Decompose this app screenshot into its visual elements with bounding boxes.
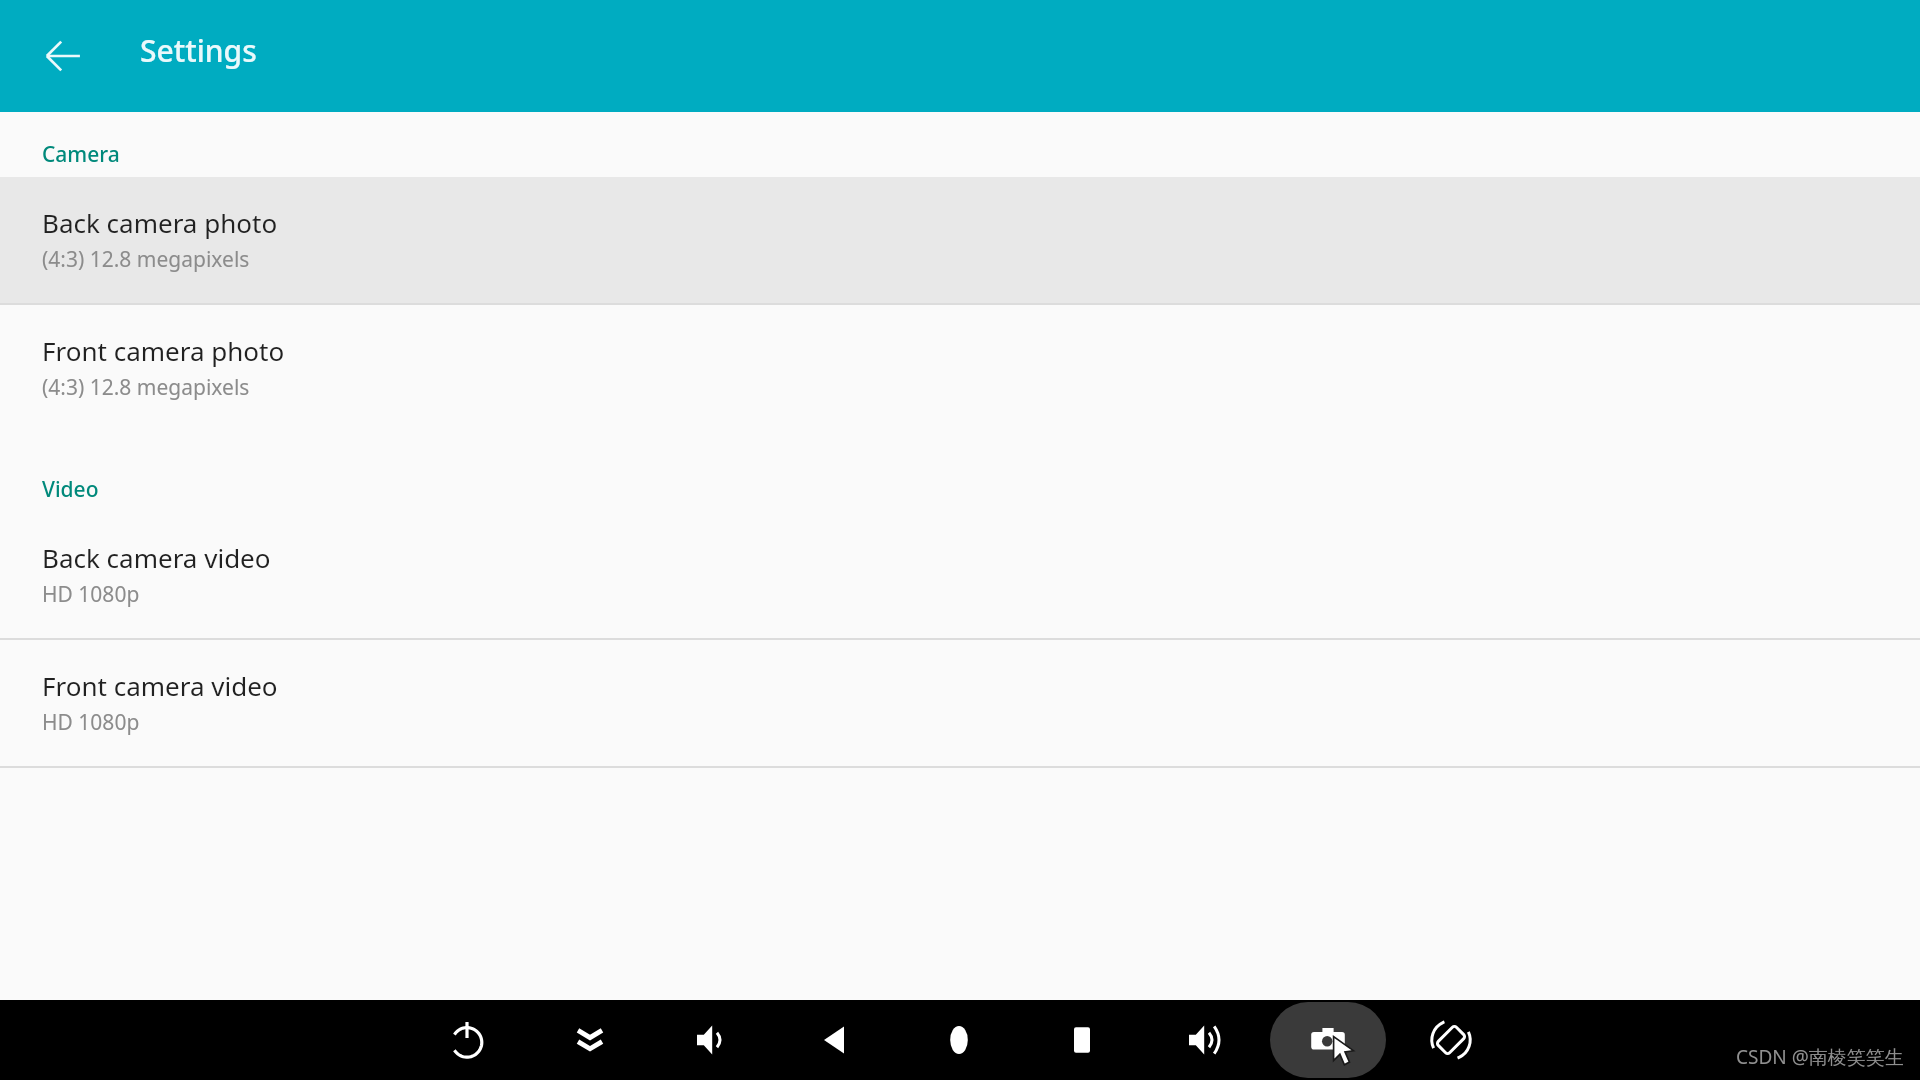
button[interactable]: Back camera photo (0, 177, 1920, 303)
button[interactable]: Screenshot (1270, 1002, 1386, 1078)
staticText: Front camera video (42, 668, 278, 703)
staticText: Settings (140, 30, 257, 71)
staticText: Video (42, 475, 99, 504)
button[interactable]: Rotate (1403, 1000, 1499, 1080)
button[interactable]: Volume up (1157, 1000, 1253, 1080)
button[interactable]: Recent apps (1034, 1000, 1130, 1080)
button[interactable]: Front camera photo (0, 305, 1920, 431)
button[interactable]: Collapse (542, 1000, 638, 1080)
staticText: Back camera video (42, 540, 271, 575)
button[interactable]: Home (911, 1000, 1007, 1080)
button[interactable]: Front camera video (0, 640, 1920, 766)
button[interactable]: Back camera video (0, 512, 1920, 638)
staticText: (4:3) 12.8 megapixels (42, 245, 250, 274)
button[interactable]: Power (419, 1000, 515, 1080)
button[interactable]: Volume down (665, 1000, 761, 1080)
button[interactable]: Back (30, 23, 96, 89)
button[interactable]: Back (788, 1000, 884, 1080)
staticText: CSDN @南棱笑笑生 (1736, 1044, 1904, 1070)
staticText: Back camera photo (42, 205, 278, 240)
staticText: Front camera photo (42, 333, 285, 368)
staticText: HD 1080p (42, 708, 140, 737)
staticText: Camera (42, 140, 120, 169)
staticText: HD 1080p (42, 580, 140, 609)
staticText: (4:3) 12.8 megapixels (42, 373, 250, 402)
